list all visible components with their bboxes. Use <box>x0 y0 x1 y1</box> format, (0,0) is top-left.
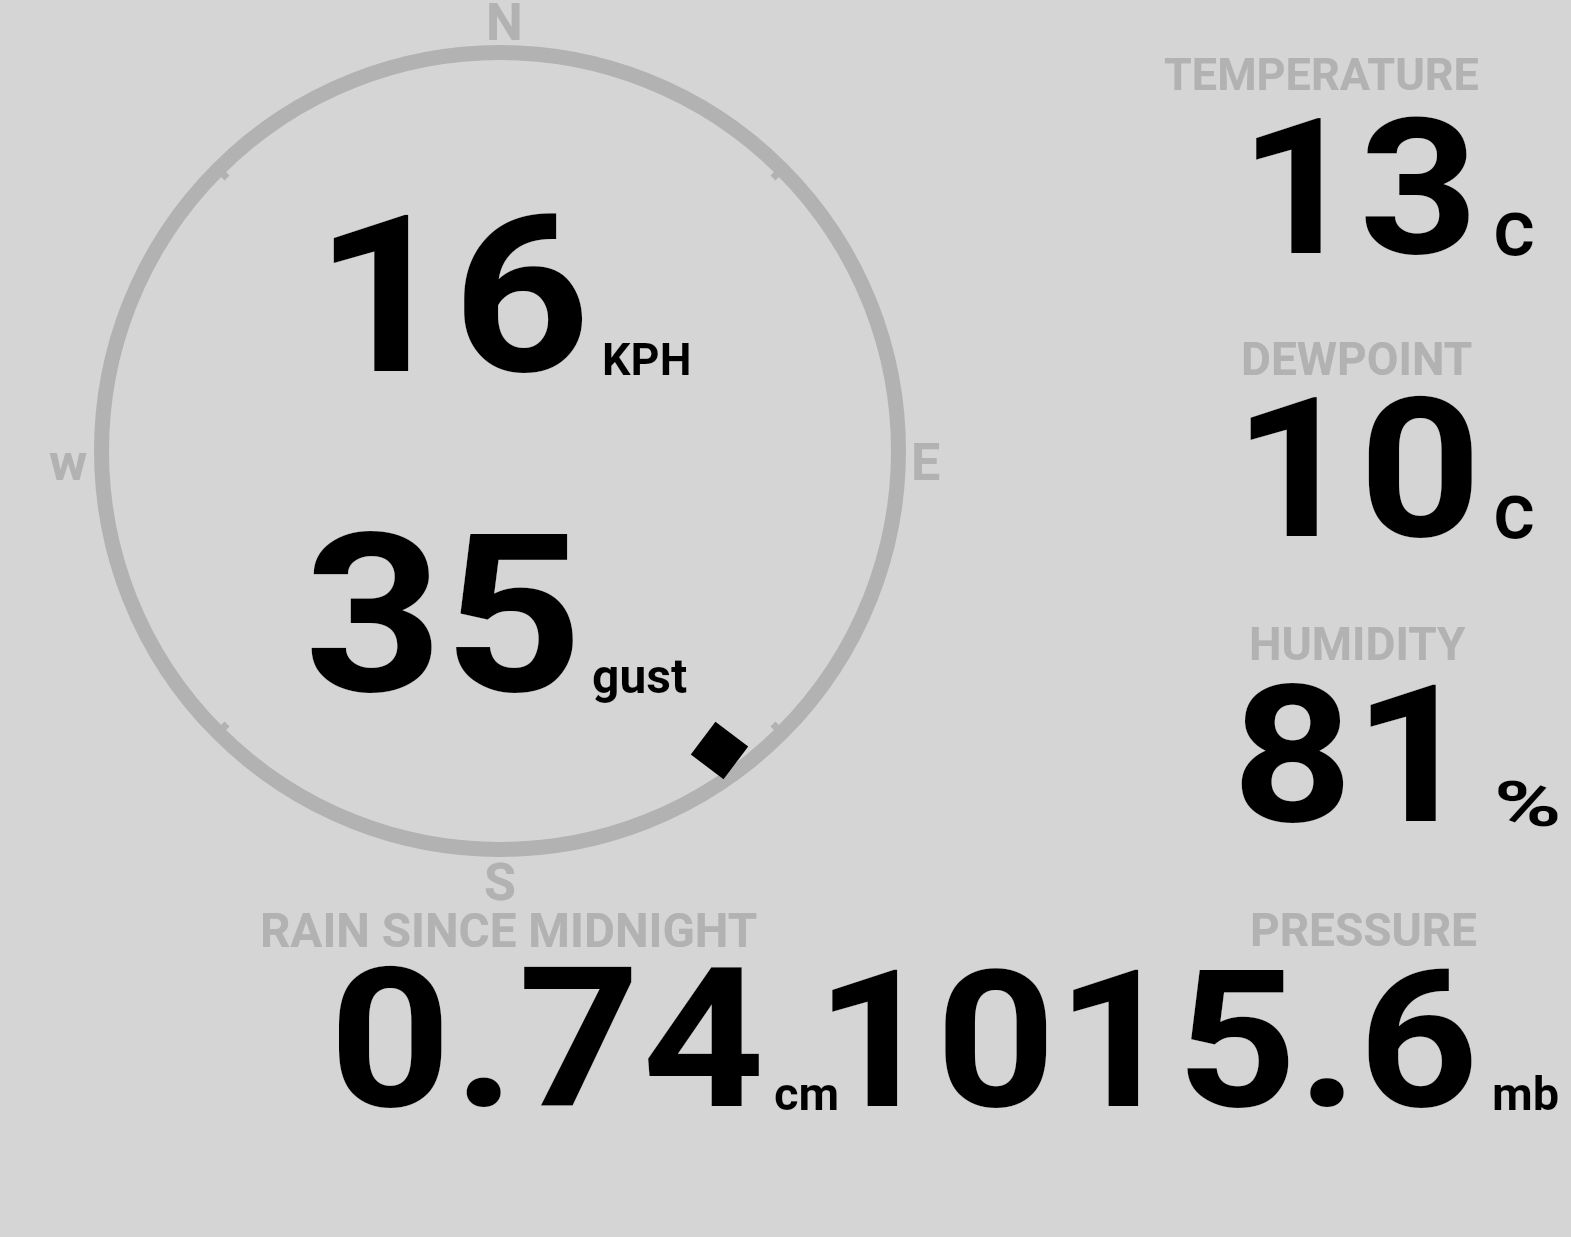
staticText: gust <box>592 648 688 704</box>
staticText: N <box>486 0 523 53</box>
staticText: c <box>1493 181 1535 275</box>
button[interactable]: Wind gust 35 KPH <box>295 510 695 710</box>
staticText: 81 <box>1232 643 1475 868</box>
button[interactable]: Wind speed 16 KPH <box>300 190 700 390</box>
staticText: 1015.6 <box>815 929 1479 1153</box>
staticText: HUMIDITY <box>1249 617 1466 671</box>
button[interactable]: Humidity 81 percent <box>1120 610 1571 840</box>
staticText: KPH <box>602 333 692 386</box>
staticText: c <box>1493 464 1535 558</box>
staticText: 0.74 <box>329 926 768 1153</box>
staticText: 16 <box>314 168 591 425</box>
staticText: DEWPOINT <box>1241 332 1473 386</box>
other: Wind from south-east <box>691 722 748 779</box>
staticText: RAIN SINCE MIDNIGHT <box>260 903 758 959</box>
staticText: % <box>1494 768 1562 842</box>
staticText: 10 <box>1233 355 1485 584</box>
staticText: TEMPERATURE <box>1164 48 1479 101</box>
button[interactable]: Dew point 10 degrees Celsius <box>1120 325 1571 555</box>
button[interactable]: Wind direction compass <box>94 45 906 857</box>
staticText: S <box>484 852 516 913</box>
staticText: E <box>911 432 941 493</box>
staticText: 35 <box>304 486 583 745</box>
button[interactable]: Pressure 1015.6 millibars <box>860 900 1560 1125</box>
staticText: cm <box>774 1066 840 1121</box>
staticText: w <box>49 432 88 493</box>
staticText: PRESSURE <box>1250 903 1477 957</box>
staticText: mb <box>1492 1066 1560 1121</box>
button[interactable]: Temperature 13 degrees Celsius <box>1120 40 1571 270</box>
button[interactable]: Rain since midnight 0.74 cm <box>250 900 850 1125</box>
staticText: 13 <box>1239 77 1480 300</box>
